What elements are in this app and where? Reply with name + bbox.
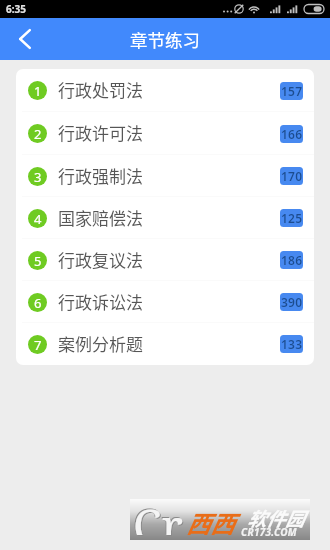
staticText: 7 [34, 336, 42, 354]
staticText: 390 [281, 294, 303, 310]
staticText: Cr [134, 495, 184, 536]
staticText: 6 [34, 294, 42, 312]
button[interactable]: 7 [16, 323, 314, 365]
staticText: 157 [281, 83, 303, 99]
staticText: 西西 [186, 505, 234, 540]
button[interactable]: Back [0, 18, 50, 60]
staticText: 章节练习 [130, 27, 200, 52]
staticText: 5 [34, 252, 42, 270]
staticText: Cr [132, 493, 182, 534]
button[interactable]: 6 [16, 281, 314, 323]
staticText: 案例分析题 [58, 331, 143, 356]
staticText: 6:35 [6, 2, 26, 16]
button[interactable]: 2 [16, 112, 314, 155]
button[interactable]: 5 [16, 239, 314, 281]
staticText: 行政复议法 [58, 247, 143, 272]
staticText: 186 [281, 252, 303, 268]
button[interactable]: 1 [16, 69, 314, 112]
staticText: 166 [281, 126, 303, 142]
staticText: Cr [133, 494, 183, 535]
staticText: 3 [34, 168, 42, 186]
staticText: 2 [34, 125, 42, 143]
staticText: 170 [281, 168, 303, 184]
staticText: 125 [281, 210, 303, 226]
button[interactable]: 3 [16, 155, 314, 197]
staticText: 行政强制法 [58, 163, 143, 188]
staticText: 4 [34, 210, 42, 228]
button[interactable]: 4 [16, 197, 314, 239]
staticText: 行政处罚法 [58, 77, 143, 102]
staticText: 行政许可法 [58, 120, 143, 145]
staticText: 133 [281, 336, 303, 352]
staticText: 1 [34, 82, 42, 100]
staticText: CR173.COM [241, 525, 297, 539]
staticText: 国家赔偿法 [58, 205, 143, 230]
staticText: 软件园 [247, 504, 305, 532]
staticText: 行政诉讼法 [58, 289, 143, 314]
